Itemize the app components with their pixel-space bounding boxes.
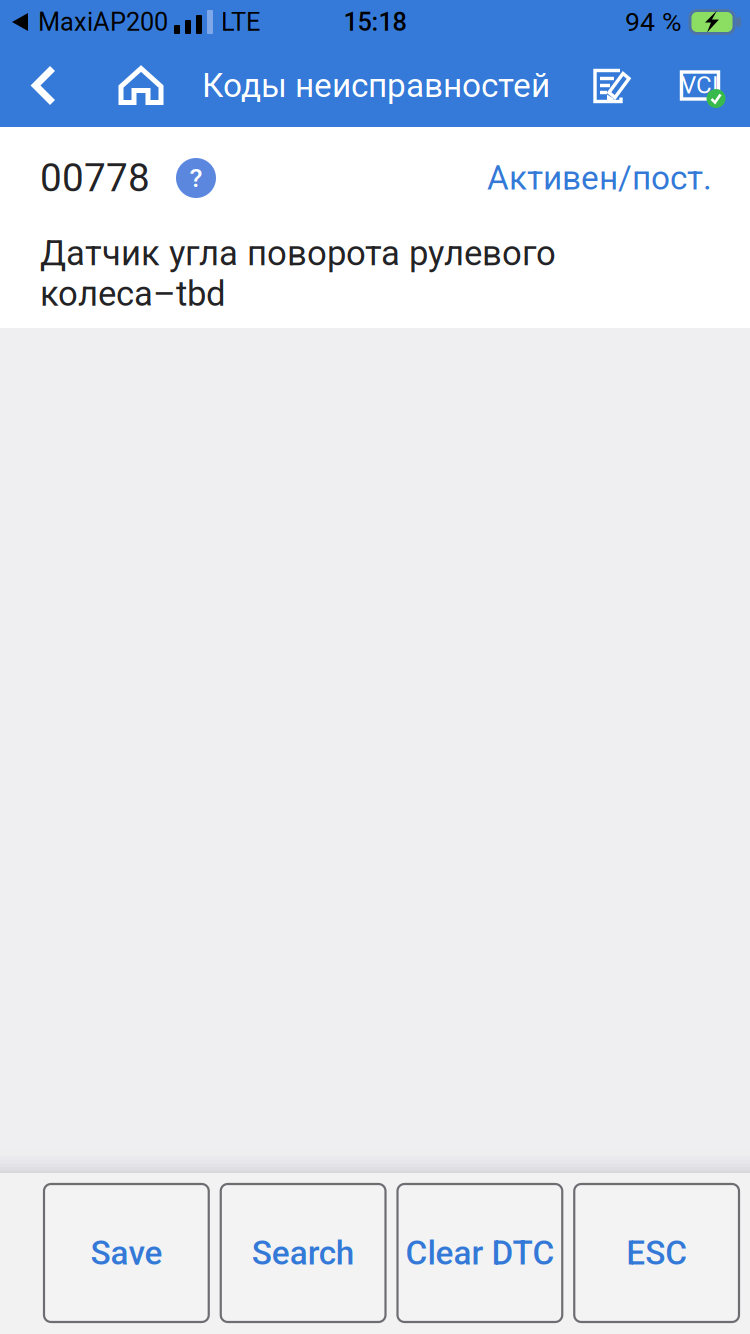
button[interactable]: Search (221, 1184, 386, 1322)
staticText: Clear DTC (405, 1233, 554, 1273)
button[interactable]: Home (88, 44, 194, 127)
staticText: Коды неисправностей (202, 66, 550, 105)
staticText: VCI (681, 71, 719, 99)
staticText: Search (252, 1233, 355, 1273)
button[interactable]: Notes (570, 44, 658, 127)
staticText: 94 % (625, 6, 682, 38)
staticText: Активен/пост. (487, 158, 712, 198)
staticText: 00778 (40, 155, 150, 201)
staticText: 15:18 (343, 7, 406, 37)
button[interactable]: Save (44, 1184, 209, 1322)
staticText: Save (90, 1233, 162, 1273)
staticText: LTE (221, 7, 260, 37)
button[interactable]: Активен/пост. (487, 158, 712, 198)
staticText: MaxiAP200 (38, 7, 168, 37)
staticText: ESC (626, 1233, 687, 1273)
button[interactable]: ESC (574, 1184, 739, 1322)
button[interactable]: Back (0, 44, 88, 127)
staticText: ? (189, 162, 202, 194)
button[interactable]: Clear DTC (397, 1184, 562, 1322)
staticText: Датчик угла поворота рулевого колеса–tbd (40, 233, 556, 314)
button[interactable]: Help (176, 158, 216, 198)
button[interactable]: VCI connection (658, 44, 742, 127)
